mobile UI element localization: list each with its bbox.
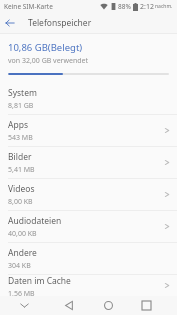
staticText: Andere	[8, 247, 37, 259]
staticText: 8,81 GB	[8, 101, 34, 111]
button[interactable]: System	[0, 83, 177, 114]
staticText: 40,00 KB	[8, 229, 37, 239]
button[interactable]: Daten im Cache	[0, 275, 177, 296]
staticText: Keine SIM-Karte	[4, 2, 53, 11]
staticText: Audiodateien	[8, 215, 62, 227]
button[interactable]: Ausblenden	[0, 296, 48, 315]
staticText: nachm.	[155, 3, 173, 10]
button[interactable]: Apps	[0, 115, 177, 146]
button[interactable]: Videos	[0, 179, 177, 210]
button[interactable]: Startseite	[90, 296, 126, 315]
staticText: Telefonspeicher	[28, 17, 92, 29]
button[interactable]: Audiodateien	[0, 211, 177, 242]
staticText: Videos	[8, 183, 35, 195]
staticText: Bilder	[8, 151, 32, 163]
button[interactable]: Übersicht	[126, 296, 166, 315]
staticText: 1,56 MB	[8, 289, 35, 296]
staticText: 304 KB	[8, 261, 31, 271]
staticText: 10,86 GB(Belegt)	[8, 41, 83, 54]
staticText: von 32,00 GB verwendet	[8, 56, 89, 66]
staticText: System	[8, 87, 37, 99]
staticText: 543 MB	[8, 133, 33, 143]
button[interactable]: Zurück	[0, 13, 20, 33]
staticText: Daten im Cache	[8, 275, 71, 287]
staticText: 8,00 KB	[8, 197, 33, 207]
staticText: 2:12	[140, 2, 154, 12]
staticText: 5,41 MB	[8, 165, 35, 175]
staticText: Apps	[8, 119, 28, 131]
button[interactable]: Bilder	[0, 147, 177, 178]
staticText: 88%	[118, 2, 131, 11]
button[interactable]: Zurück	[48, 296, 90, 315]
button[interactable]: Andere	[0, 243, 177, 274]
